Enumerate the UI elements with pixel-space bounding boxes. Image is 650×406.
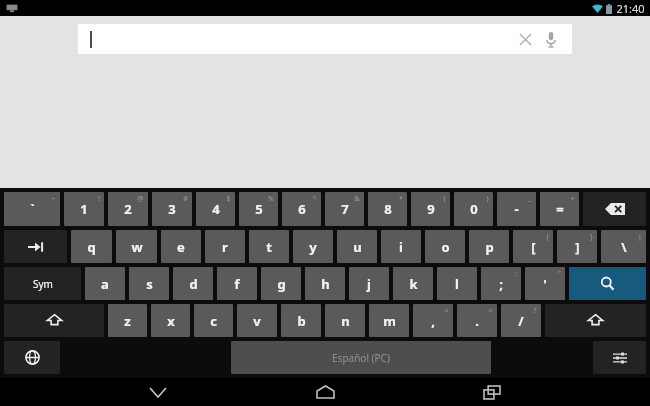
button[interactable]: ^ (282, 192, 321, 226)
button[interactable]: _ (497, 192, 536, 226)
button[interactable]: Español (PC) (231, 341, 491, 374)
button[interactable]: Home (280, 378, 370, 406)
button[interactable]: a (85, 267, 125, 300)
button[interactable]: Shift (4, 304, 104, 337)
button[interactable]: & (325, 192, 364, 226)
staticText: . (475, 312, 479, 330)
button[interactable]: : (481, 267, 521, 300)
staticText: l (455, 275, 459, 293)
button[interactable]: d (173, 267, 213, 300)
button[interactable]: " (525, 267, 565, 300)
button[interactable]: c (194, 304, 233, 337)
staticText: j (367, 275, 371, 293)
button[interactable]: ) (454, 192, 493, 226)
staticText: , (431, 312, 435, 330)
staticText: m (383, 312, 396, 330)
button[interactable]: Voice search (540, 28, 562, 50)
button[interactable]: j (349, 267, 389, 300)
staticText: 7 (341, 200, 349, 218)
button[interactable]: r (205, 230, 245, 263)
button[interactable]: m (369, 304, 409, 337)
staticText: y (309, 238, 317, 256)
button[interactable]: * (368, 192, 407, 226)
button[interactable]: Clear (514, 28, 536, 50)
button[interactable]: Shift (545, 304, 646, 337)
button[interactable]: k (393, 267, 433, 300)
staticText: u (353, 238, 362, 256)
button[interactable]: Hide keyboard (113, 378, 203, 406)
button[interactable]: u (337, 230, 377, 263)
staticText: % (268, 194, 274, 204)
staticText: a (101, 275, 109, 293)
staticText: o (441, 238, 450, 256)
button[interactable]: s (129, 267, 169, 300)
staticText: [ (531, 238, 536, 256)
staticText: Español (PC) (332, 351, 390, 365)
staticText: g (277, 275, 286, 293)
button[interactable]: Search (569, 267, 646, 300)
button[interactable]: q (71, 230, 112, 263)
button[interactable]: ( (411, 192, 450, 226)
button[interactable]: h (305, 267, 345, 300)
button[interactable]: Clear (78, 24, 572, 54)
button[interactable]: ! (64, 192, 104, 226)
staticText: $ (226, 194, 231, 204)
staticText: d (189, 275, 198, 293)
button[interactable]: + (540, 192, 579, 226)
button[interactable]: } (557, 230, 597, 263)
button[interactable]: ? (501, 304, 541, 337)
staticText: 1 (80, 200, 88, 218)
button[interactable]: { (513, 230, 553, 263)
button[interactable]: Keyboard settings (593, 341, 646, 374)
button[interactable]: < (413, 304, 453, 337)
staticText: ] (575, 238, 580, 256)
staticText: 8 (384, 200, 392, 218)
staticText: ! (98, 194, 100, 204)
staticText: 6 (298, 200, 306, 218)
staticText: k (409, 275, 418, 293)
button[interactable]: x (151, 304, 190, 337)
button[interactable]: $ (196, 192, 235, 226)
button[interactable]: Backspace (583, 192, 646, 226)
button[interactable]: b (281, 304, 321, 337)
staticText: f (234, 275, 240, 293)
button[interactable]: v (237, 304, 277, 337)
button[interactable]: Recent apps (447, 378, 537, 406)
staticText: \ (621, 238, 627, 256)
button[interactable]: n (325, 304, 365, 337)
button[interactable]: y (293, 230, 333, 263)
staticText: 21:40 (616, 1, 645, 16)
staticText: b (297, 312, 306, 330)
button[interactable]: z (108, 304, 147, 337)
staticText: ) (486, 194, 489, 204)
staticText: 2 (124, 200, 132, 218)
staticText: ~ (51, 194, 56, 204)
button[interactable]: g (261, 267, 301, 300)
staticText: x (167, 312, 175, 330)
staticText: e (177, 238, 185, 256)
button[interactable]: w (116, 230, 157, 263)
button[interactable]: e (161, 230, 201, 263)
button[interactable]: ~ (4, 192, 60, 226)
button[interactable]: t (249, 230, 289, 263)
button[interactable]: o (425, 230, 465, 263)
button[interactable]: Change language (4, 341, 60, 374)
button[interactable]: % (239, 192, 278, 226)
button[interactable]: i (381, 230, 421, 263)
button[interactable]: > (457, 304, 497, 337)
button[interactable]: Tab (4, 230, 67, 263)
staticText: r (222, 238, 228, 256)
button[interactable]: | (601, 230, 646, 263)
staticText: 0 (470, 200, 478, 218)
staticText: ' (543, 275, 547, 293)
button[interactable]: # (152, 192, 192, 226)
staticText: # (183, 194, 188, 204)
button[interactable]: f (217, 267, 257, 300)
button[interactable]: Sym (4, 267, 81, 300)
staticText: q (87, 238, 96, 256)
staticText: 5 (255, 200, 263, 218)
staticText: w (131, 238, 143, 256)
button[interactable]: l (437, 267, 477, 300)
button[interactable]: @ (108, 192, 148, 226)
button[interactable]: p (469, 230, 509, 263)
